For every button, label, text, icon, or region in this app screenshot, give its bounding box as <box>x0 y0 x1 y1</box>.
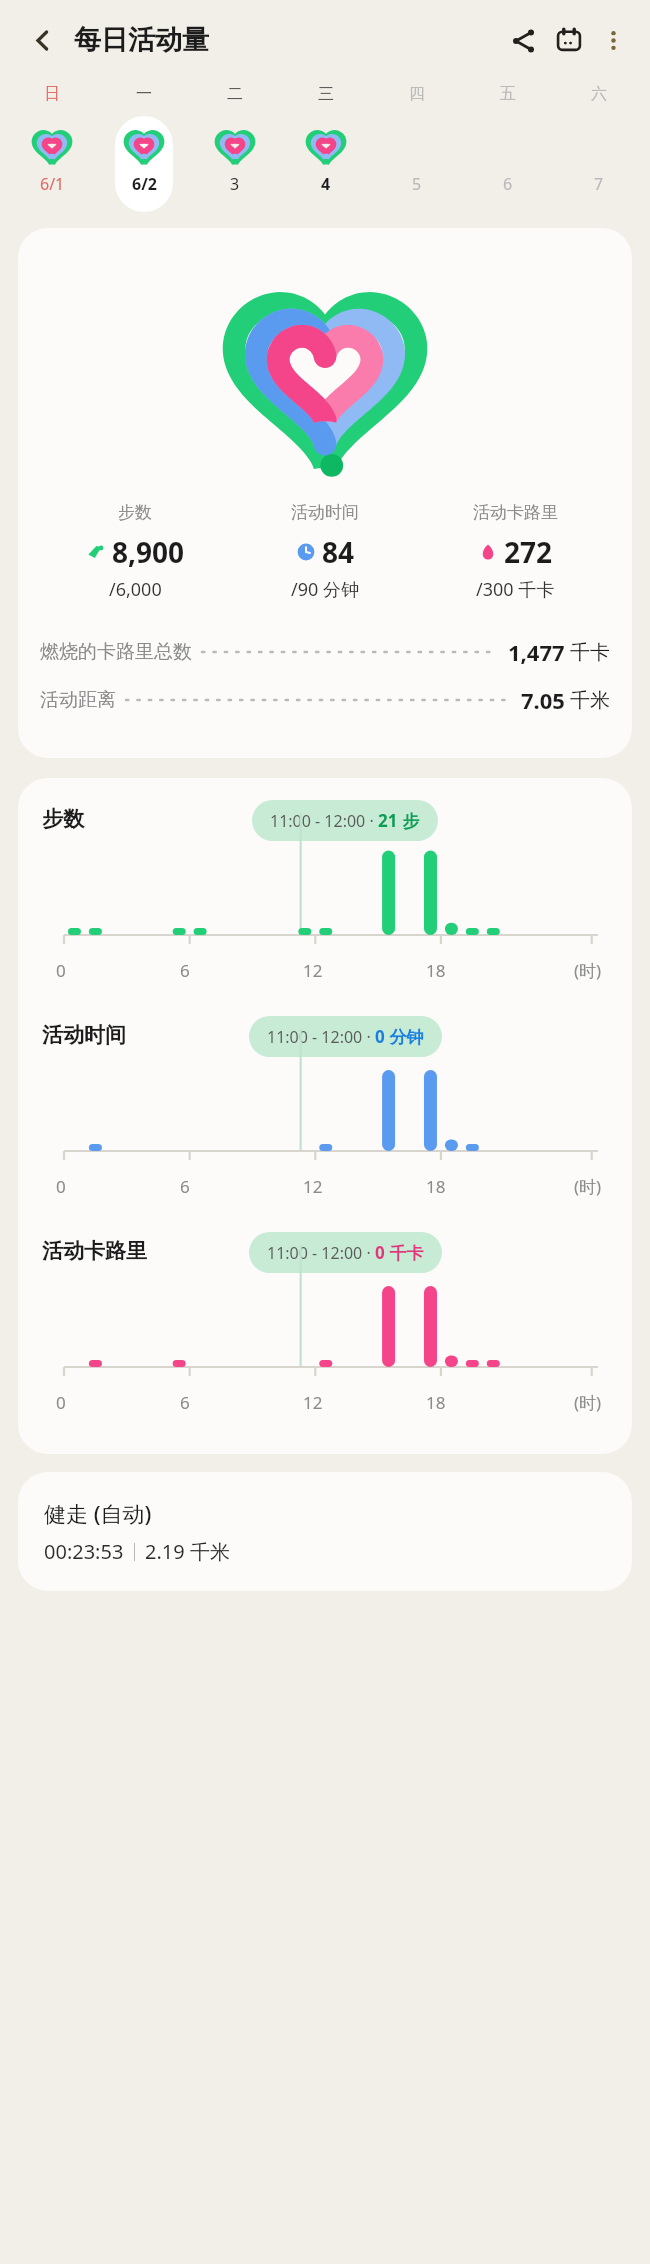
staticText: 日 <box>44 84 60 104</box>
staticText: 5 <box>412 173 422 195</box>
button[interactable]: 三 <box>280 84 371 212</box>
staticText: 6/2 <box>132 173 157 195</box>
staticText: 18 <box>426 1175 446 1198</box>
staticText: 12 <box>303 1391 323 1414</box>
button[interactable]: 二 <box>189 84 280 212</box>
staticText: 6 <box>180 1175 190 1198</box>
button[interactable]: 四 <box>371 84 462 212</box>
staticText: 0 <box>375 1025 385 1048</box>
staticText: (时) <box>574 1175 602 1198</box>
staticText: 二 <box>227 84 243 104</box>
staticText: 6 <box>503 173 513 195</box>
button[interactable]: 活动时间 <box>42 1016 608 1198</box>
staticText: 12 <box>303 1175 323 1198</box>
staticText: 活动时间 <box>291 502 359 523</box>
staticText: /90 分钟 <box>291 577 359 602</box>
staticText: 0 <box>56 959 66 982</box>
staticText: 活动距离 <box>40 688 116 712</box>
staticText: 六 <box>591 84 607 104</box>
staticText: 步数 <box>42 806 84 832</box>
staticText: 步 <box>398 809 420 832</box>
staticText: 0 <box>375 1241 385 1264</box>
staticText: 18 <box>426 1391 446 1414</box>
staticText: 分钟 <box>385 1025 424 1048</box>
button[interactable]: 五 <box>462 84 553 212</box>
button[interactable]: 活动距离 <box>40 676 610 724</box>
staticText: 0 <box>56 1391 66 1414</box>
staticText: 11:00 - 12:00 · <box>267 1026 375 1048</box>
button[interactable]: 健走 (自动) <box>18 1472 632 1591</box>
staticText: 健走 (自动) <box>44 1498 152 1528</box>
staticText: /300 千卡 <box>476 577 555 602</box>
button[interactable]: More options <box>592 19 634 61</box>
staticText: 11:00 - 12:00 · <box>270 810 378 832</box>
staticText: 11:00 - 12:00 · <box>267 1242 375 1264</box>
button[interactable]: Share <box>500 17 546 63</box>
staticText: 步数 <box>118 502 152 523</box>
staticText: 12 <box>303 959 323 982</box>
staticText: /6,000 <box>109 577 162 602</box>
button[interactable]: 活动卡路里 <box>42 1232 608 1414</box>
staticText: 4 <box>321 173 331 195</box>
staticText: 3 <box>230 173 240 195</box>
staticText: 1,477 <box>508 637 565 667</box>
staticText: 五 <box>500 84 516 104</box>
staticText: 6 <box>180 1391 190 1414</box>
staticText: (时) <box>574 959 602 982</box>
staticText: 燃烧的卡路里总数 <box>40 640 192 664</box>
button[interactable]: 六 <box>553 84 644 212</box>
button[interactable]: 燃烧的卡路里总数 <box>40 628 610 676</box>
staticText: 6 <box>180 959 190 982</box>
staticText: 三 <box>318 84 334 104</box>
staticText: 千米 <box>570 688 610 713</box>
staticText: 2.19 千米 <box>145 1538 230 1565</box>
button[interactable]: 日 <box>6 84 98 212</box>
staticText: 千卡 <box>385 1241 424 1264</box>
button[interactable]: 一 <box>98 84 189 212</box>
staticText: (时) <box>574 1391 602 1414</box>
staticText: 活动时间 <box>42 1022 126 1048</box>
staticText: 8,900 <box>112 533 185 571</box>
staticText: 84 <box>322 533 355 571</box>
button[interactable]: 步数 <box>42 800 608 982</box>
staticText: 18 <box>426 959 446 982</box>
button[interactable]: 步数 <box>18 228 632 758</box>
staticText: 7 <box>594 173 604 195</box>
staticText: 一 <box>136 84 152 104</box>
button[interactable]: Back <box>20 18 64 62</box>
staticText: 21 <box>378 809 398 832</box>
button[interactable]: Calendar <box>546 17 592 63</box>
staticText: 千卡 <box>570 640 610 665</box>
staticText: 活动卡路里 <box>42 1238 147 1264</box>
staticText: 0 <box>56 1175 66 1198</box>
staticText: 6/1 <box>40 173 65 195</box>
staticText: 272 <box>504 533 553 571</box>
staticText: 00:23:53 <box>44 1538 124 1565</box>
staticText: 活动卡路里 <box>473 502 558 523</box>
staticText: 四 <box>409 84 425 104</box>
staticText: 7.05 <box>521 685 565 715</box>
staticText: 每日活动量 <box>74 23 209 57</box>
